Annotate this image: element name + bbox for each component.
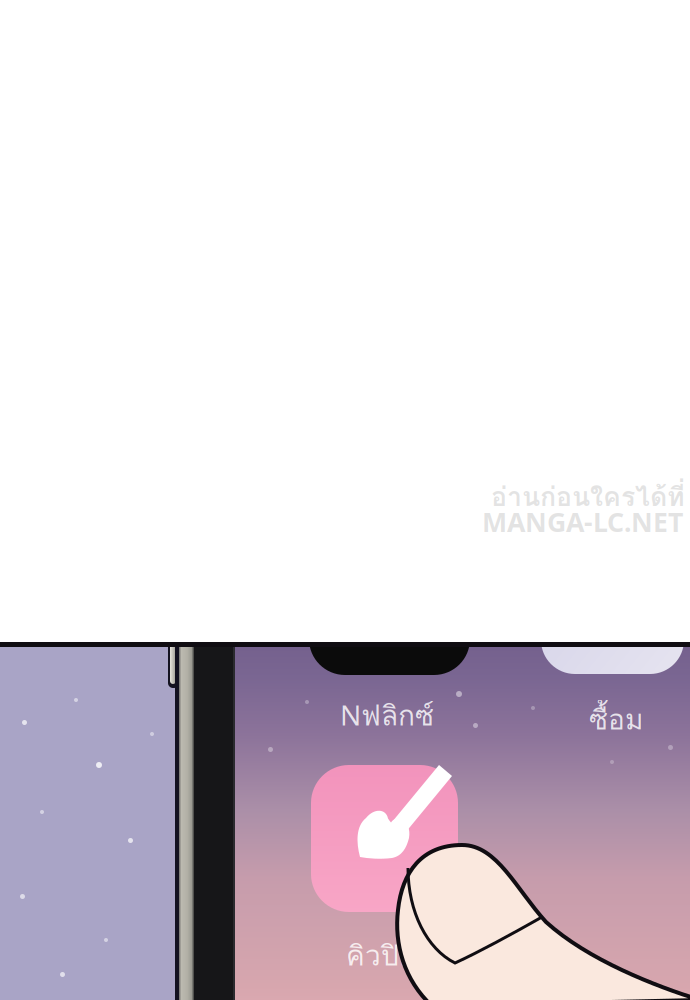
button[interactable]: Volume up bbox=[168, 642, 179, 688]
staticText: อ่านก่อนใครได้ที่ bbox=[491, 476, 685, 517]
staticText: ซื้อม bbox=[589, 698, 643, 741]
staticText: Nฟลิกซ์ bbox=[340, 694, 434, 737]
button[interactable]: คิวปิด bbox=[311, 765, 458, 912]
button[interactable]: Nฟลิกซ์ bbox=[309, 555, 470, 675]
staticText: คิวปิด bbox=[346, 934, 417, 977]
button[interactable]: ซื้อม bbox=[541, 557, 684, 674]
staticText: MANGA-LC.NET bbox=[482, 504, 683, 539]
